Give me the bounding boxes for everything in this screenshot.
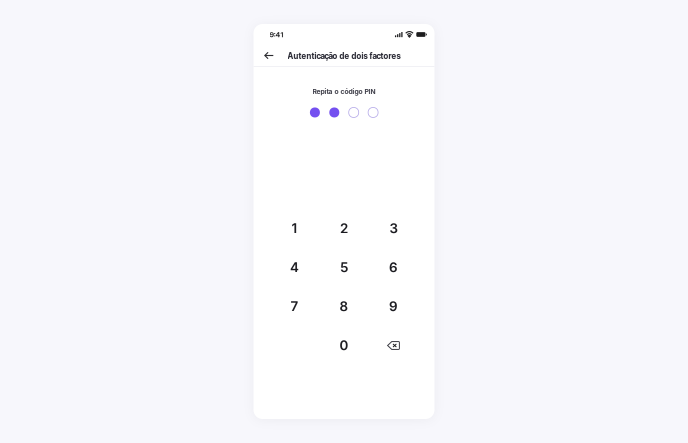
staticText: 6 (389, 259, 398, 275)
button[interactable]: 9 (369, 287, 418, 326)
button[interactable]: 3 (369, 209, 418, 248)
button[interactable]: 7 (270, 287, 319, 326)
button[interactable]: Delete (369, 326, 418, 365)
staticText: Autenticação de dois factores (287, 51, 400, 61)
staticText: 4 (290, 259, 299, 275)
staticText: 7 (290, 298, 298, 314)
staticText: 9:41 (269, 30, 283, 39)
staticText: 3 (389, 220, 397, 236)
button[interactable]: 0 (319, 326, 369, 365)
staticText: 5 (340, 259, 348, 275)
staticText: 9 (389, 298, 398, 314)
button[interactable]: 1 (270, 209, 319, 248)
button[interactable]: Back (259, 45, 279, 65)
staticText: 1 (291, 220, 297, 236)
staticText: 8 (339, 298, 348, 314)
staticText: 0 (339, 337, 348, 353)
button[interactable]: 4 (270, 248, 319, 287)
button[interactable]: 8 (319, 287, 369, 326)
staticText: Repita o código PIN (312, 87, 375, 96)
staticText: 2 (340, 220, 348, 236)
button[interactable]: 5 (319, 248, 369, 287)
button[interactable]: 6 (369, 248, 418, 287)
button[interactable]: 2 (319, 209, 369, 248)
